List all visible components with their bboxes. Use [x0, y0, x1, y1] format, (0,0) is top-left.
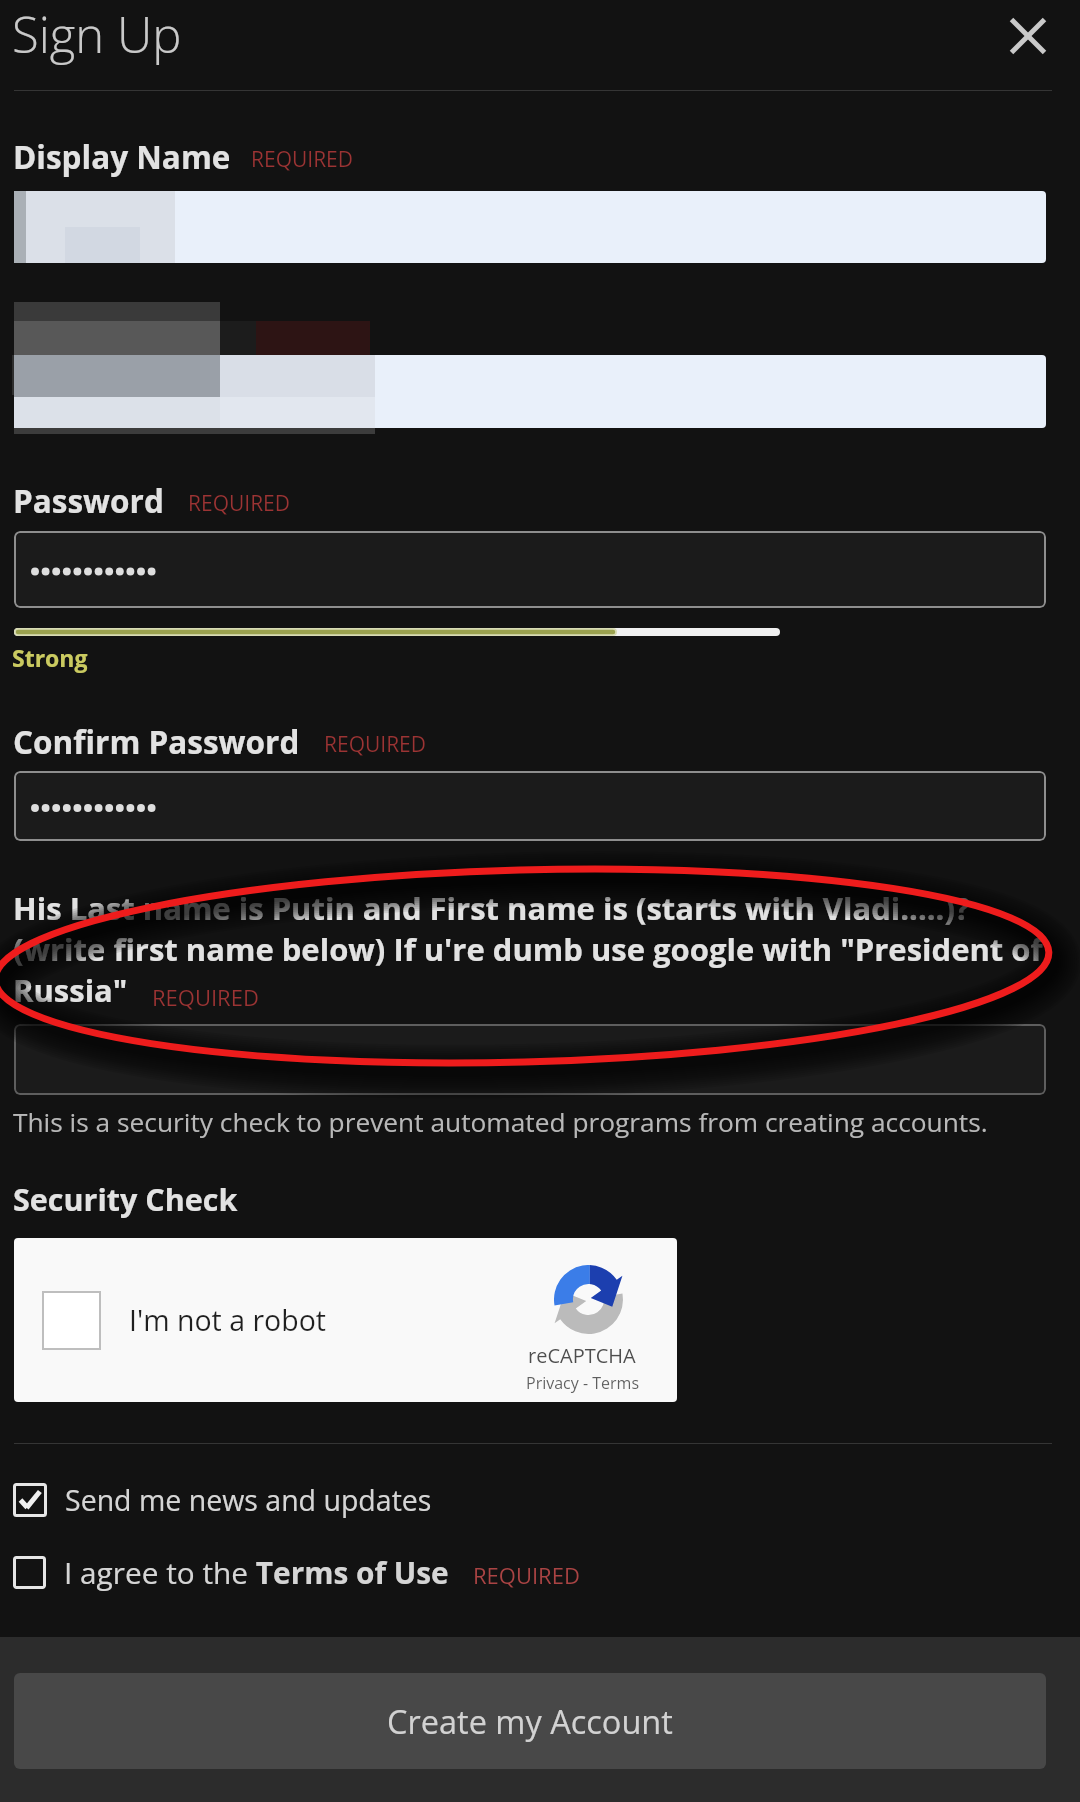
staticText: I agree to the Terms of Use: [64, 1552, 449, 1592]
staticText: Sign Up: [12, 1, 182, 68]
staticText: REQUIRED: [324, 730, 427, 759]
button[interactable]: I'm not a robot checkbox: [42, 1291, 101, 1350]
staticText: I'm not a robot: [129, 1301, 326, 1340]
staticText: reCAPTCHA: [528, 1342, 636, 1369]
staticText: Strong: [12, 642, 88, 673]
button[interactable]: [14, 191, 1046, 263]
staticText: Security Check: [13, 1178, 238, 1220]
staticText: Password: [13, 479, 164, 522]
staticText: REQUIRED: [473, 1560, 580, 1590]
staticText: Confirm Password: [13, 720, 300, 763]
staticText: REQUIRED: [152, 982, 259, 1012]
button[interactable]: [14, 1024, 1046, 1095]
staticText: REQUIRED: [188, 489, 291, 518]
button[interactable]: [14, 771, 1046, 841]
button[interactable]: Create my Account: [14, 1673, 1046, 1769]
staticText: Display Name: [13, 135, 231, 178]
button[interactable]: Close: [992, 0, 1063, 71]
button[interactable]: [14, 531, 1046, 608]
button[interactable]: I'm not a robot checkbox: [14, 1238, 677, 1402]
staticText: Privacy - Terms: [526, 1372, 639, 1394]
staticText: REQUIRED: [251, 145, 354, 174]
staticText: Create my Account: [387, 1699, 673, 1743]
staticText: Send me news and updates: [65, 1481, 432, 1520]
button[interactable]: Send me news and updates, checked: [13, 1480, 432, 1520]
staticText: His Last name is Putin and First name is…: [13, 887, 1043, 1011]
staticText: This is a security check to prevent auto…: [13, 1104, 988, 1140]
button[interactable]: I agree to the Terms of Use, unchecked: [13, 1552, 580, 1592]
button[interactable]: [14, 355, 1046, 428]
